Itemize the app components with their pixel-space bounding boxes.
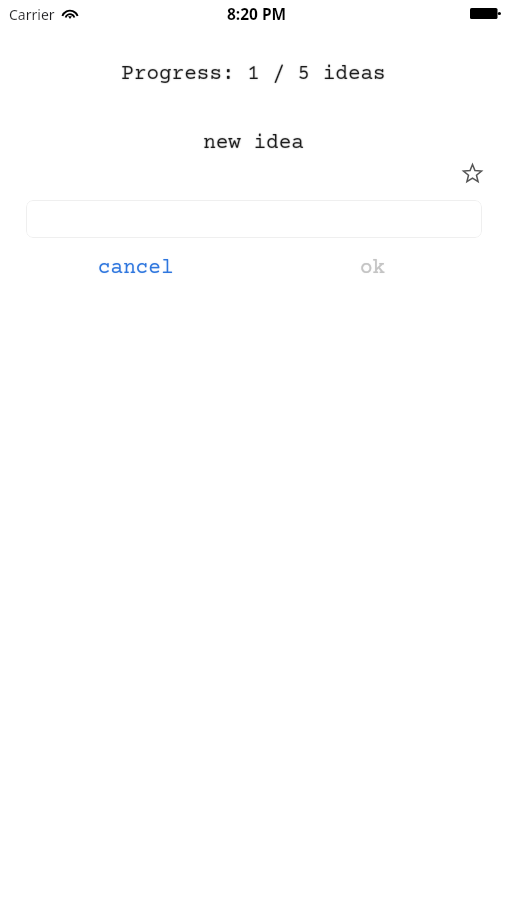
staticText: ok — [360, 257, 386, 281]
button[interactable]: ok — [348, 253, 398, 285]
staticText: new idea — [0, 132, 507, 156]
button[interactable]: cancel — [83, 253, 188, 285]
staticText: Progress: 1 / 5 ideas — [0, 63, 507, 87]
button[interactable] — [26, 200, 482, 238]
staticText: cancel — [98, 257, 174, 281]
button[interactable]: Favorite — [456, 157, 488, 189]
staticText: 8:20 PM — [227, 3, 287, 24]
staticText: Carrier — [9, 5, 55, 24]
